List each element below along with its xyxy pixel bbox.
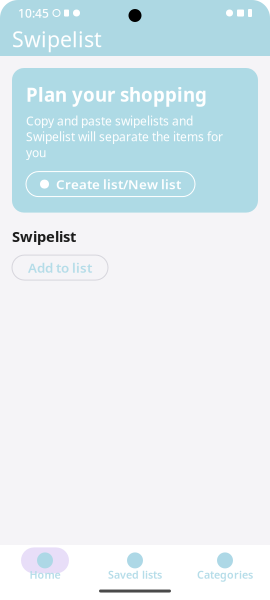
staticText: Saved lists: [108, 567, 162, 582]
button[interactable]: Add to list: [12, 255, 108, 280]
button[interactable]: Create list/New list: [26, 172, 195, 197]
staticText: Swipelist: [12, 227, 76, 246]
staticText: Create list/New list: [56, 175, 181, 193]
staticText: Copy and paste swipelists and Swipelist …: [26, 113, 223, 161]
staticText: Plan your shopping: [26, 82, 207, 107]
staticText: 10:45: [18, 5, 49, 21]
button[interactable]: Categories: [180, 547, 270, 581]
button[interactable]: Home: [0, 547, 90, 581]
staticText: Swipelist: [12, 25, 102, 53]
staticText: Add to list: [28, 259, 92, 276]
staticText: Categories: [197, 567, 253, 582]
button[interactable]: Saved lists: [90, 547, 180, 581]
staticText: Home: [29, 567, 60, 582]
